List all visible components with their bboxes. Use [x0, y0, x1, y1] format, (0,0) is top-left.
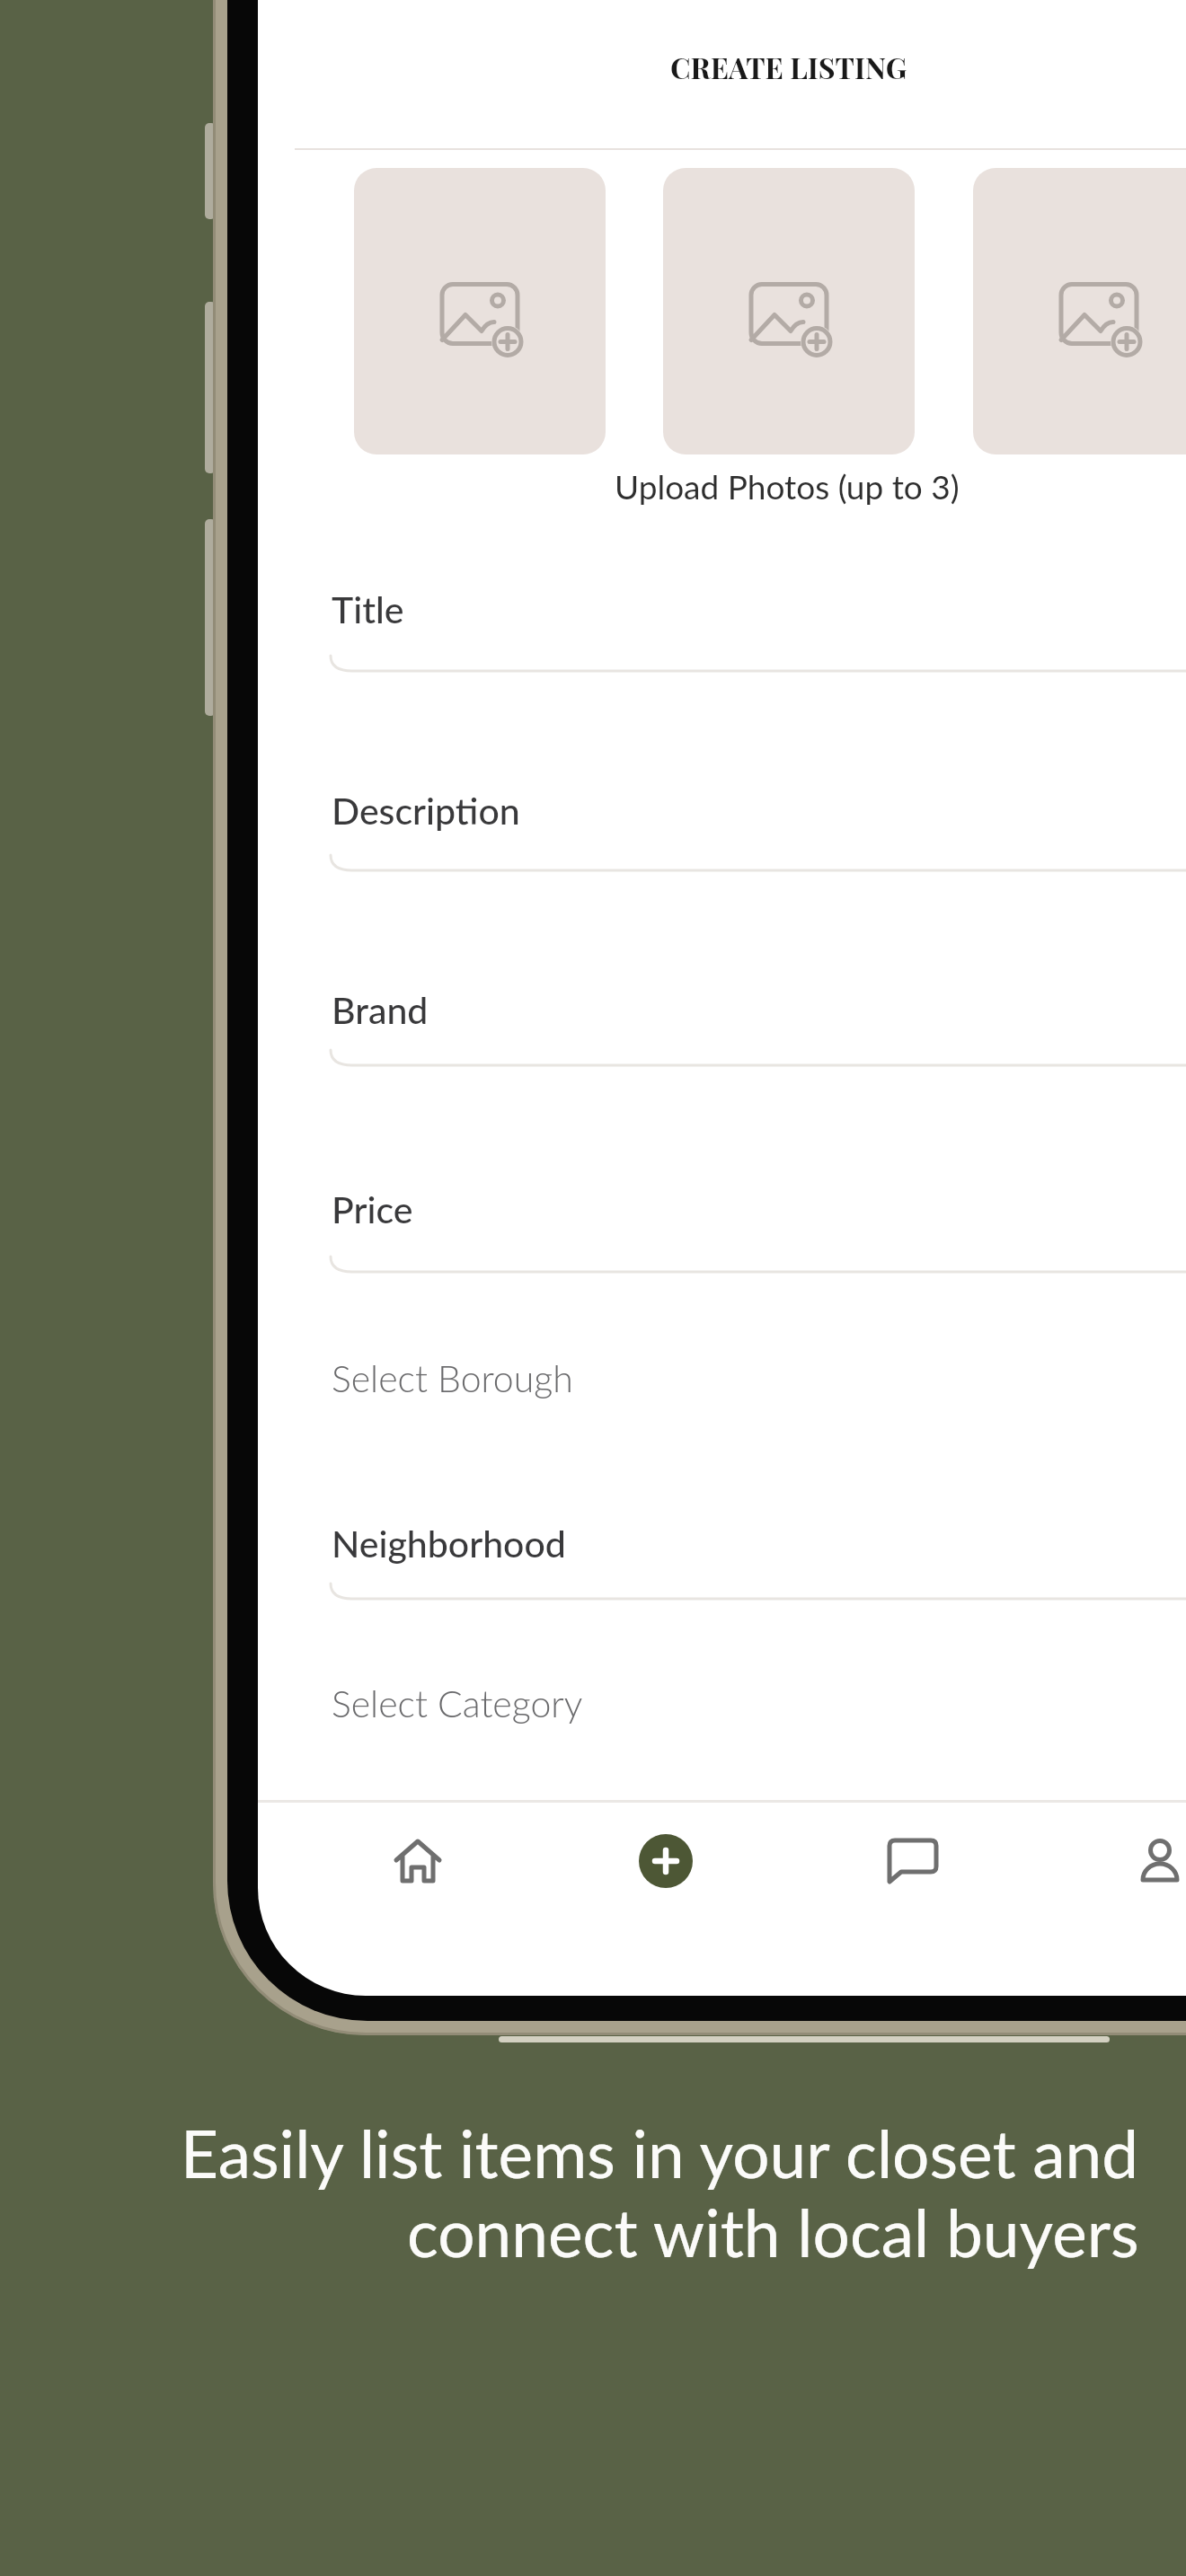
- button[interactable]: [382, 1825, 454, 1897]
- button[interactable]: Brand: [332, 988, 1140, 1042]
- staticText: Select Category: [332, 1681, 583, 1725]
- staticText: Brand: [332, 988, 429, 1032]
- staticText: Neighborhood: [332, 1522, 566, 1566]
- staticText: Select Borough: [332, 1356, 573, 1400]
- button[interactable]: [973, 168, 1186, 454]
- button[interactable]: [639, 1834, 693, 1888]
- button[interactable]: Select Category: [332, 1681, 1140, 1735]
- button[interactable]: Select Borough: [332, 1356, 1140, 1410]
- button[interactable]: Price: [332, 1187, 1140, 1241]
- staticText: Easily list items in your closet and: [181, 2113, 1139, 2192]
- staticText: CREATE LISTING: [670, 48, 907, 86]
- staticText: Price: [332, 1187, 413, 1231]
- staticText: connect with local buyers: [407, 2192, 1139, 2272]
- button[interactable]: [1124, 1825, 1186, 1897]
- button[interactable]: Neighborhood: [332, 1522, 1140, 1575]
- button[interactable]: Description: [332, 789, 1140, 842]
- staticText: Description: [332, 789, 520, 833]
- button[interactable]: [663, 168, 915, 454]
- staticText: Title: [332, 587, 404, 631]
- staticText: Upload Photos (up to 3): [615, 466, 960, 506]
- button[interactable]: Title: [332, 587, 1140, 641]
- button[interactable]: [354, 168, 606, 454]
- button[interactable]: [877, 1823, 949, 1895]
